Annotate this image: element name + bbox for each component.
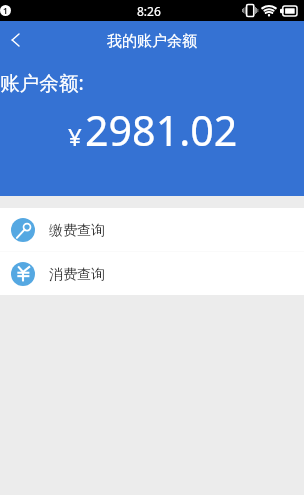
staticText: 缴费查询 — [49, 222, 105, 240]
button[interactable]: 消费查询 — [0, 252, 304, 295]
staticText: 2981.02 — [85, 102, 238, 158]
staticText: 账户余额: — [0, 69, 84, 96]
staticText: 我的账户余额 — [107, 32, 197, 51]
button[interactable]: Back — [0, 25, 30, 55]
staticText: ¥ — [68, 120, 82, 153]
staticText: 1 — [3, 5, 8, 16]
staticText: 8:26 — [137, 3, 161, 19]
staticText: 消费查询 — [49, 266, 105, 284]
button[interactable]: 缴费查询 — [0, 208, 304, 251]
